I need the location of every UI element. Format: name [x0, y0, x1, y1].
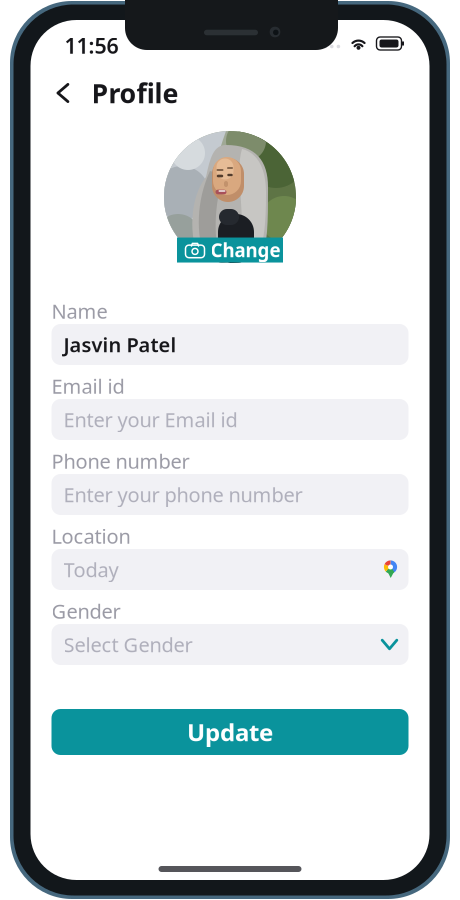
staticText: Select Gender	[63, 631, 192, 658]
button[interactable]: Jasvin Patel	[51, 324, 408, 365]
staticText: Enter your Email id	[63, 406, 237, 433]
button[interactable]: Select Gender	[51, 624, 408, 665]
button[interactable]: Enter your phone number	[51, 474, 408, 515]
staticText: Gender	[51, 598, 120, 624]
staticText: Jasvin Patel	[63, 331, 176, 358]
staticText: Update	[187, 716, 273, 748]
staticText: Change	[210, 238, 280, 262]
staticText: Name	[51, 298, 107, 324]
button[interactable]: Change	[177, 237, 283, 262]
button[interactable]: Back	[30, 67, 91, 119]
staticText: 11:56	[64, 31, 118, 60]
staticText: Enter your phone number	[63, 481, 302, 508]
button[interactable]: Today	[51, 549, 408, 590]
button[interactable]: Update	[51, 709, 408, 755]
button[interactable]: Enter your Email id	[51, 399, 408, 440]
staticText: Phone number	[51, 448, 189, 474]
staticText: Email id	[51, 373, 124, 399]
staticText: Location	[51, 523, 130, 549]
staticText: Profile	[91, 75, 178, 111]
staticText: Today	[63, 556, 118, 583]
